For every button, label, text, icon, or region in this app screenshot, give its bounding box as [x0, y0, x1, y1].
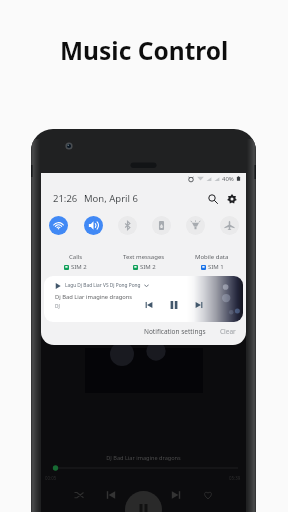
button[interactable]: Notification settings — [142, 325, 208, 338]
staticText: DJ Bad Liar imagine dragons — [41, 454, 246, 462]
staticText: Music Control — [60, 34, 229, 67]
button[interactable]: Airplane mode — [212, 212, 246, 238]
button[interactable]: Shuffle — [72, 488, 86, 502]
staticText: 40% — [222, 175, 234, 183]
button[interactable]: Favourite — [201, 488, 215, 502]
staticText: Mobile data — [195, 253, 229, 261]
button[interactable]: Previous — [142, 298, 155, 311]
button[interactable]: Next track — [169, 488, 183, 502]
button[interactable]: Previous track — [104, 488, 118, 502]
button[interactable]: Flashlight — [178, 212, 212, 238]
button[interactable]: Pause — [125, 491, 162, 512]
staticText: Lagu Dj Bad Liar VS Dj Pong Pong — [65, 282, 141, 289]
button[interactable]: Clear — [218, 325, 238, 338]
staticText: SIM 1 — [208, 263, 224, 271]
staticText: 21:26 — [53, 192, 78, 205]
staticText: SIM 2 — [71, 263, 87, 271]
button[interactable]: Pause — [167, 298, 180, 311]
button[interactable]: Sound — [76, 212, 110, 238]
staticText: Calls — [69, 253, 83, 261]
staticText: Text messages — [123, 253, 165, 261]
button[interactable]: Auto rotate — [144, 212, 178, 238]
staticText: Clear — [220, 327, 236, 336]
button[interactable]: Settings — [224, 191, 239, 206]
staticText: 05:39 — [229, 475, 241, 481]
button[interactable]: Search — [205, 191, 220, 206]
staticText: 00:05 — [45, 475, 57, 481]
staticText: SIM 2 — [140, 263, 156, 271]
staticText: Mon, April 6 — [84, 192, 138, 205]
staticText: Dj Bad Liar imagine dragons — [55, 293, 133, 301]
staticText: DJ — [55, 303, 60, 310]
staticText: Notification settings — [144, 327, 206, 336]
button[interactable]: Next — [192, 298, 205, 311]
button[interactable]: Bluetooth — [110, 212, 144, 238]
button[interactable]: Wi-Fi — [41, 212, 76, 238]
